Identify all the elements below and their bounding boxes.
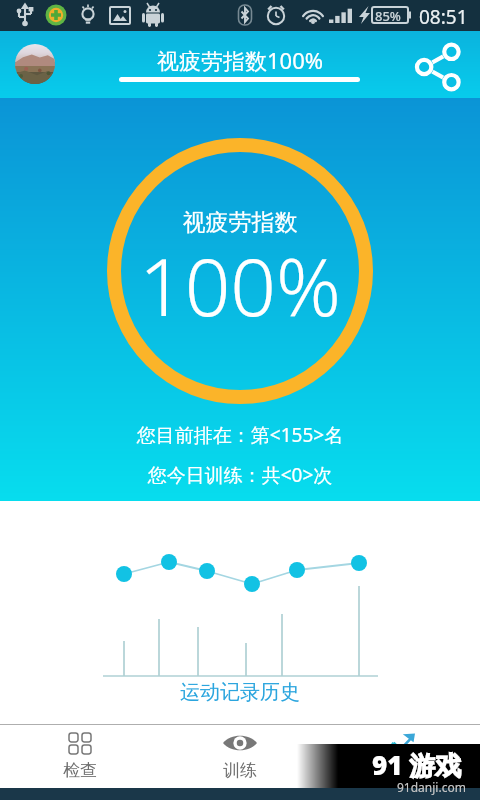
- staticText: 85%: [375, 7, 401, 25]
- button[interactable]: 记录: [320, 724, 480, 788]
- staticText: 视疲劳指数100%: [0, 45, 480, 75]
- staticText: 视疲劳指数: [0, 208, 480, 237]
- button[interactable]: Share: [414, 43, 462, 91]
- staticText: 100%: [0, 230, 480, 339]
- staticText: 91 游戏: [372, 747, 462, 783]
- staticText: 您今日训练：共<0>次: [0, 462, 480, 488]
- button[interactable]: Profile: [15, 44, 55, 84]
- staticText: 您目前排在：第<155>名: [0, 422, 480, 448]
- staticText: 91danji.com: [397, 779, 466, 795]
- button[interactable]: 训练: [160, 724, 320, 788]
- staticText: 运动记录历史: [0, 680, 480, 705]
- button[interactable]: 检查: [0, 724, 160, 788]
- staticText: 检查: [63, 760, 97, 781]
- staticText: 记录: [383, 760, 417, 781]
- staticText: 08:51: [419, 4, 468, 30]
- staticText: 训练: [223, 760, 257, 781]
